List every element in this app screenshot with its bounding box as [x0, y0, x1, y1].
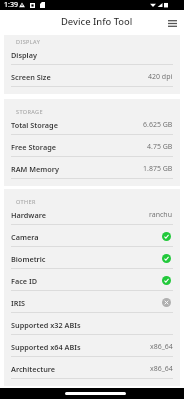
- button[interactable]: Hardware: [4, 203, 180, 225]
- staticText: Free Storage: [11, 142, 56, 152]
- button[interactable]: Screen Size: [4, 65, 180, 87]
- staticText: Display: [11, 50, 37, 60]
- button[interactable]: IRIS: [4, 291, 180, 313]
- staticText: 6.625 GB: [143, 120, 173, 130]
- button[interactable]: Supported x32 ABIs: [4, 313, 180, 335]
- staticText: RAM Memory: [11, 164, 59, 174]
- button[interactable]: Face ID: [4, 269, 180, 291]
- button[interactable]: Architecture: [4, 357, 180, 379]
- staticText: Device Info Tool: [61, 15, 133, 28]
- staticText: Supported x32 ABIs: [11, 320, 81, 330]
- button[interactable]: Free Storage: [4, 135, 180, 157]
- staticText: 1:39: [4, 0, 18, 10]
- staticText: ranchu: [149, 210, 173, 220]
- staticText: Total Storage: [11, 120, 58, 130]
- staticText: OTHER: [16, 198, 36, 205]
- staticText: 4.75 GB: [147, 142, 173, 152]
- button[interactable]: Display: [4, 43, 180, 65]
- button[interactable]: Supported x64 ABIs: [4, 335, 180, 357]
- staticText: Biometric: [11, 254, 46, 264]
- button[interactable]: Menu: [164, 15, 180, 31]
- staticText: 420 dpi: [148, 72, 173, 82]
- staticText: Camera: [11, 232, 39, 242]
- staticText: 1.875 GB: [143, 164, 173, 174]
- button[interactable]: RAM Memory: [4, 157, 180, 179]
- staticText: x86_64: [150, 364, 173, 374]
- button[interactable]: Biometric: [4, 247, 180, 269]
- staticText: STORAGE: [16, 108, 43, 115]
- staticText: DISPLAY: [16, 38, 41, 45]
- staticText: Hardware: [11, 210, 46, 220]
- staticText: Supported x64 ABIs: [11, 342, 81, 352]
- staticText: Architecture: [11, 364, 56, 374]
- button[interactable]: Total Storage: [4, 113, 180, 135]
- staticText: x86_64: [150, 342, 173, 352]
- staticText: IRIS: [11, 298, 26, 308]
- staticText: Screen Size: [11, 72, 51, 82]
- staticText: Face ID: [11, 276, 38, 286]
- button[interactable]: Camera: [4, 225, 180, 247]
